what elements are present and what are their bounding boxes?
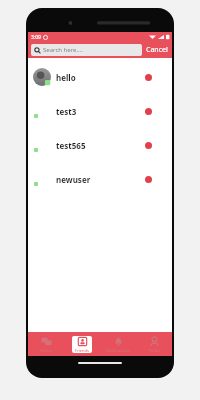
button[interactable]: Status indicator for test3 [145,108,152,115]
button[interactable]: test3 [28,94,172,128]
button[interactable]: Profile [136,332,172,356]
staticText: Cancel [146,45,168,55]
button[interactable]: test565 [28,128,172,162]
staticText: hello [56,72,145,83]
staticText: Friends [75,348,89,353]
staticText: newuser [56,174,145,185]
staticText: test3 [56,106,145,117]
button[interactable]: Home [28,332,64,356]
button[interactable]: Status indicator for test565 [145,142,152,149]
staticText: Profile [148,348,161,353]
staticText: test565 [56,140,145,151]
staticText: 3:09 [31,34,41,41]
button[interactable]: Friends [64,332,100,356]
staticText: Notifications [106,348,130,353]
button[interactable]: Status indicator for hello [145,74,152,81]
staticText: Search here.... [43,46,83,54]
staticText: Home [40,348,52,353]
button[interactable]: Cancel [145,45,169,55]
button[interactable]: Notifications [100,332,136,356]
button[interactable]: hello [28,60,172,94]
button[interactable]: Search here.... [31,44,142,56]
button[interactable]: newuser [28,162,172,196]
button[interactable]: Status indicator for newuser [145,176,152,183]
